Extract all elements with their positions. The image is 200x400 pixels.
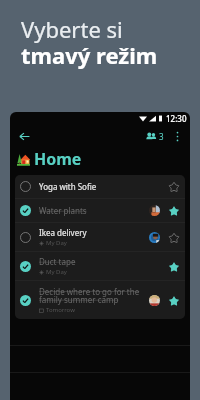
staticText: Tomorrow — [46, 306, 75, 314]
staticText: My Day — [46, 239, 67, 247]
staticText: Home — [34, 148, 82, 170]
button[interactable]: Water plants — [15, 199, 185, 222]
staticText: tmavý režim — [21, 40, 158, 70]
staticText: 3 — [159, 131, 164, 142]
button[interactable]: Back — [16, 128, 33, 145]
staticText: Decide where to go for the family summer… — [39, 286, 146, 305]
staticText: Vyberte si — [21, 14, 123, 44]
staticText: My Day — [46, 268, 67, 276]
button[interactable]: Yoga with Sofie — [15, 175, 185, 198]
staticText: Yoga with Sofie — [39, 181, 97, 192]
button[interactable]: Star task — [167, 231, 180, 244]
staticText: Water plants — [39, 205, 87, 216]
staticText: Duct tape — [39, 256, 76, 267]
staticText: 12:30 — [166, 113, 187, 124]
button[interactable]: Star task — [167, 294, 180, 307]
staticText: Ikea delivery — [39, 227, 87, 238]
button[interactable]: Star task — [167, 180, 180, 193]
button[interactable]: Ikea delivery — [15, 223, 185, 251]
button[interactable]: Star task — [167, 260, 180, 273]
button[interactable]: Star task — [167, 204, 180, 217]
button[interactable]: More options — [170, 129, 185, 144]
button[interactable]: Decide where to go for the family summer… — [15, 281, 185, 319]
button[interactable]: Duct tape — [15, 252, 185, 280]
button[interactable]: Shared with 3 people — [144, 128, 166, 145]
